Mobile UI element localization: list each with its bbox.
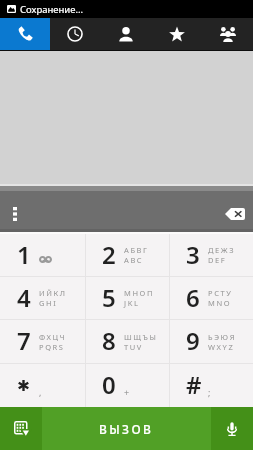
staticText: ВЫЗОВ (99, 421, 154, 437)
button[interactable]: , (0, 364, 85, 407)
staticText: 8 (102, 324, 116, 357)
staticText: ABC (124, 255, 144, 265)
button[interactable]: 2 (85, 234, 169, 276)
button[interactable]: Groups (202, 18, 253, 50)
staticText: РСТУ (208, 288, 233, 298)
staticText: 7 (17, 324, 31, 357)
staticText: ДЕЖЗ (208, 245, 236, 255)
staticText: ; (208, 386, 211, 398)
staticText: PQRS (39, 342, 65, 352)
button[interactable]: Voice search (211, 407, 253, 450)
staticText: 0 (102, 368, 116, 401)
staticText: ФХЦЧ (39, 332, 67, 342)
staticText: MNO (208, 298, 232, 308)
button[interactable]: Contacts (100, 18, 151, 50)
staticText: ИЙКЛ (39, 288, 67, 298)
staticText: + (124, 386, 130, 398)
staticText: 6 (186, 281, 200, 314)
staticText: , (39, 386, 42, 398)
staticText: 4 (17, 281, 31, 314)
button[interactable]: 4 (0, 277, 85, 319)
staticText: 3 (186, 238, 200, 271)
staticText: 5 (102, 281, 116, 314)
staticText: Сохранение... (20, 3, 84, 16)
button[interactable]: More options (0, 191, 30, 232)
staticText: 2 (102, 238, 116, 271)
staticText: ЬЭЮЯ (208, 332, 237, 342)
button[interactable]: # (169, 364, 253, 407)
staticText: # (186, 368, 202, 401)
button[interactable]: Hide dialpad (0, 407, 42, 450)
button[interactable]: 1 (0, 234, 85, 276)
staticText: АБВГ (124, 245, 149, 255)
staticText: ШЩЪЫ (124, 332, 158, 342)
button[interactable]: 9 (169, 320, 253, 363)
staticText: GHI (39, 298, 58, 308)
button[interactable]: 6 (169, 277, 253, 319)
staticText: WXYZ (208, 342, 235, 352)
button[interactable]: Recents (50, 18, 100, 50)
staticText: 9 (186, 324, 200, 357)
staticText: DEF (208, 255, 227, 265)
button[interactable]: ВЫЗОВ (42, 407, 211, 450)
button[interactable]: 7 (0, 320, 85, 363)
staticText: JKL (124, 298, 140, 308)
button[interactable]: Backspace (217, 191, 253, 232)
button[interactable]: 8 (85, 320, 169, 363)
button[interactable]: Favorites (151, 18, 202, 50)
button[interactable]: 3 (169, 234, 253, 276)
button[interactable]: 5 (85, 277, 169, 319)
staticText: МНОП (124, 288, 154, 298)
button[interactable]: 0 (85, 364, 169, 407)
staticText: TUV (124, 342, 143, 352)
button[interactable]: Dialpad (0, 18, 50, 50)
staticText: 1 (17, 238, 31, 271)
